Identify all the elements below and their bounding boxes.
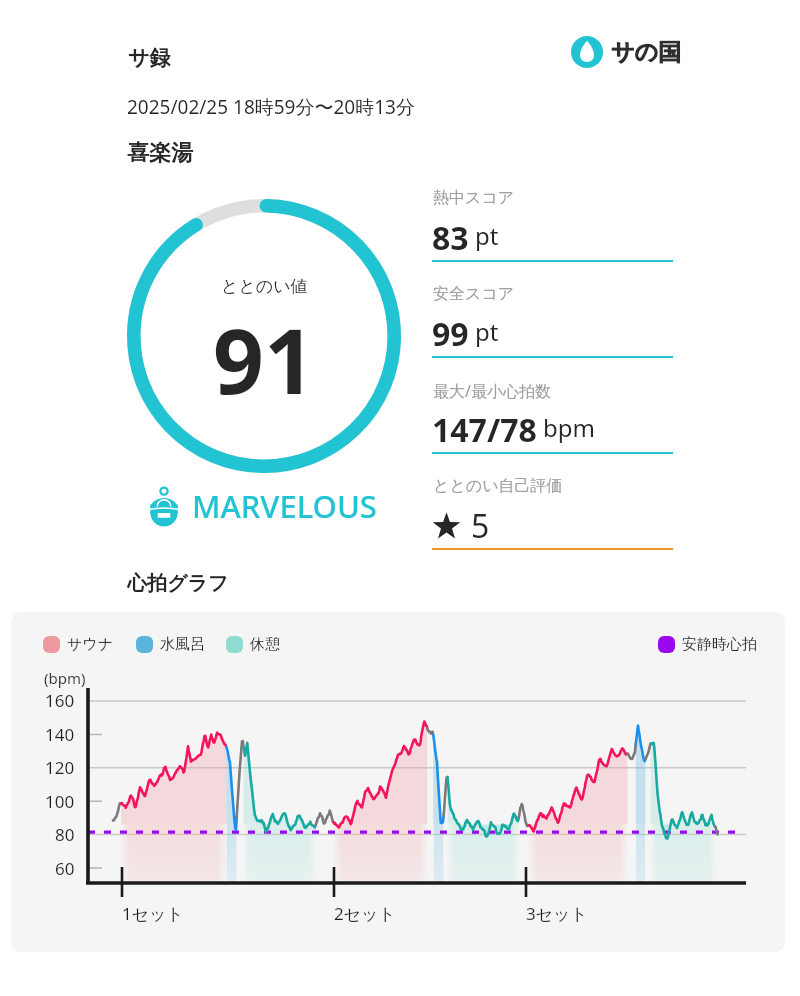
staticText: ととのい値 bbox=[221, 276, 308, 297]
staticText: 60 bbox=[55, 857, 75, 880]
other: ととのいランク bbox=[149, 486, 179, 527]
staticText: 水風呂 bbox=[160, 635, 205, 654]
staticText: ととのい自己評価 bbox=[433, 476, 563, 496]
staticText: 160 bbox=[45, 689, 75, 712]
staticText: 安全スコア bbox=[433, 284, 515, 304]
staticText: 3セット bbox=[526, 902, 588, 925]
button[interactable]: サの国 bbox=[571, 36, 682, 68]
staticText: 99 bbox=[432, 312, 469, 350]
staticText: 83 bbox=[432, 216, 469, 254]
staticText: 120 bbox=[45, 756, 75, 779]
staticText: サ録 bbox=[128, 45, 171, 71]
button[interactable]: ととのいランク bbox=[149, 485, 377, 527]
button[interactable]: 安全スコア bbox=[432, 281, 673, 358]
staticText: 2セット bbox=[334, 902, 396, 925]
staticText: 140 bbox=[45, 723, 75, 746]
staticText: 休憩 bbox=[250, 635, 280, 654]
staticText: 心拍グラフ bbox=[127, 571, 229, 596]
staticText: 2025/02/25 18時59分〜20時13分 bbox=[127, 94, 415, 120]
staticText: 80 bbox=[55, 823, 75, 846]
button[interactable]: 熱中スコア bbox=[432, 185, 673, 262]
staticText: 147/78 bbox=[432, 408, 537, 446]
staticText: 喜楽湯 bbox=[127, 139, 193, 167]
staticText: サウナ bbox=[67, 635, 114, 654]
staticText: bpm bbox=[543, 411, 595, 444]
staticText: 1セット bbox=[122, 902, 184, 925]
staticText: MARVELOUS bbox=[192, 485, 377, 527]
staticText: サの国 bbox=[611, 38, 682, 67]
staticText: 最大/最小心拍数 bbox=[433, 380, 551, 402]
staticText: 安静時心拍 bbox=[682, 635, 757, 654]
staticText: pt bbox=[475, 219, 499, 252]
staticText: pt bbox=[475, 315, 499, 348]
button[interactable]: ととのい自己評価 bbox=[432, 473, 673, 550]
staticText: 100 bbox=[45, 790, 75, 813]
staticText: 5 bbox=[471, 504, 490, 541]
button[interactable]: 最大/最小心拍数 bbox=[432, 377, 673, 454]
staticText: 熱中スコア bbox=[433, 188, 515, 208]
staticText: (bpm) bbox=[44, 668, 86, 688]
staticText: 91 bbox=[213, 299, 315, 420]
